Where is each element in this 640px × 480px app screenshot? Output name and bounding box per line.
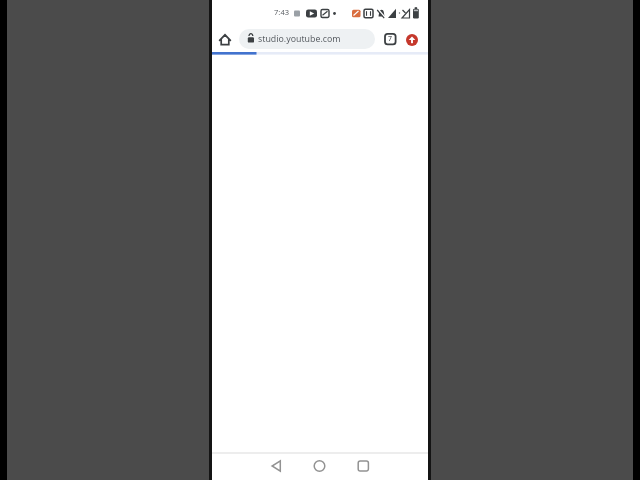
button[interactable]: studio.youtube.com (239, 29, 375, 49)
button[interactable] (264, 455, 289, 477)
staticText: studio.youtube.com (258, 33, 341, 45)
button[interactable] (351, 455, 376, 477)
staticText: 7 (388, 34, 393, 44)
button[interactable]: 7 (383, 32, 398, 46)
button[interactable] (214, 29, 236, 50)
staticText: 7:43 (274, 7, 290, 17)
button[interactable] (406, 34, 418, 46)
button[interactable] (307, 455, 332, 477)
